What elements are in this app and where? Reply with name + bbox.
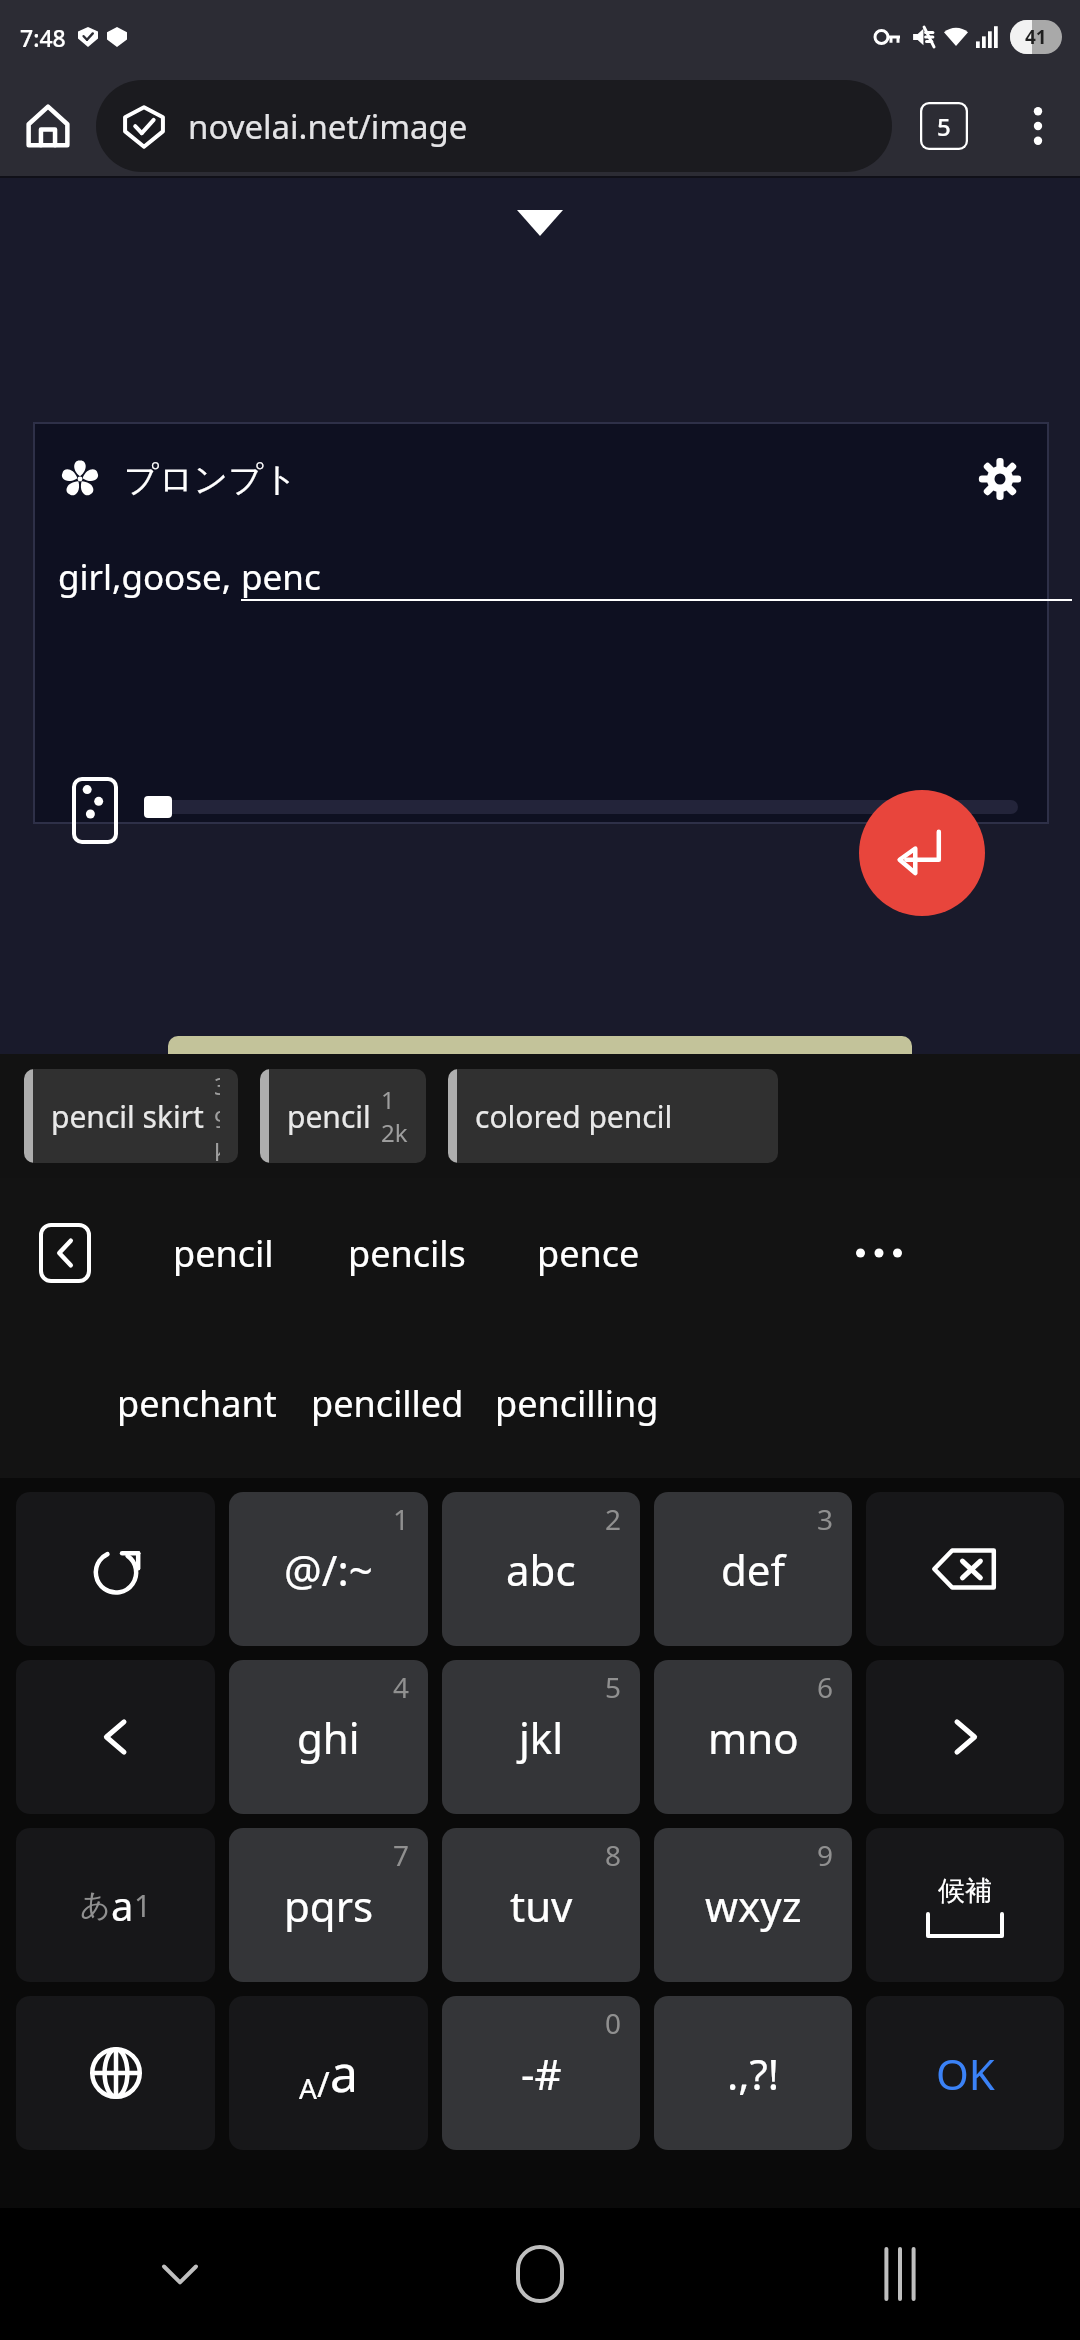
button[interactable]: back [866, 1492, 1064, 1646]
staticText: pqrs [284, 1877, 374, 1934]
staticText: 8 [605, 1836, 622, 1874]
button[interactable]: OK [866, 1996, 1064, 2150]
staticText: @/:~ [284, 1541, 373, 1598]
button[interactable]: novelai.net/image [96, 80, 892, 172]
staticText: 5 [605, 1668, 622, 1706]
button[interactable]: .,?! [654, 1996, 852, 2150]
staticText: 39k [214, 1069, 220, 1163]
staticText: pencil [173, 1229, 274, 1278]
button[interactable]: More suggestions [678, 1178, 1080, 1328]
button[interactable]: Tabs, 5 open [892, 74, 996, 178]
button[interactable]: 3 [654, 1492, 852, 1646]
button[interactable]: left [16, 1660, 215, 1814]
button[interactable]: globe [16, 1996, 215, 2150]
button[interactable]: Generate [859, 790, 985, 916]
staticText: A [299, 2069, 317, 2107]
button[interactable]: Hide keyboard [0, 2208, 360, 2340]
staticText: a [330, 2039, 359, 2107]
button[interactable]: More options [996, 74, 1080, 178]
staticText: 2 [605, 1500, 622, 1538]
staticText: 0 [605, 2004, 622, 2042]
button[interactable]: 1 [229, 1492, 428, 1646]
button[interactable]: 5 [442, 1660, 640, 1814]
staticText: 5 [937, 110, 951, 143]
button[interactable]: pencil skirt [24, 1069, 238, 1163]
button[interactable]: Settings [974, 453, 1026, 505]
button[interactable]: Home [0, 74, 96, 178]
staticText: 3 [817, 1500, 834, 1538]
staticText: 7:48 [20, 22, 66, 53]
button[interactable]: pencilled [292, 1328, 482, 1478]
button[interactable]: 0 [442, 1996, 640, 2150]
button[interactable]: pencilling [482, 1328, 672, 1478]
button[interactable]: pence [498, 1178, 678, 1328]
staticText: def [721, 1541, 785, 1598]
staticText: あ [80, 1886, 111, 1924]
staticText: 候補 [938, 1874, 992, 1908]
staticText: abc [506, 1541, 576, 1598]
staticText: 12k [381, 1083, 408, 1149]
button[interactable]: penchant [102, 1328, 292, 1478]
button[interactable]: pencil [260, 1069, 426, 1163]
staticText: pence [537, 1229, 640, 1278]
staticText: 9 [817, 1836, 834, 1874]
staticText: pencilled [311, 1379, 464, 1428]
staticText: pencils [348, 1229, 466, 1278]
staticText: wxyz [705, 1877, 802, 1934]
staticText: .,?! [727, 2045, 780, 2102]
staticText: 7 [393, 1836, 410, 1874]
staticText: novelai.net/image [188, 104, 468, 149]
button[interactable]: undo [16, 1492, 215, 1646]
button[interactable]: 8 [442, 1828, 640, 1982]
staticText: pencil [287, 1096, 371, 1137]
staticText: pencilling [495, 1379, 659, 1428]
staticText: penchant [117, 1379, 277, 1428]
button[interactable]: case [229, 1996, 428, 2150]
staticText: colored pencil (mediu [475, 1096, 760, 1137]
staticText: penc [241, 553, 321, 601]
button[interactable]: aa1 [16, 1828, 215, 1982]
staticText: ghi [297, 1709, 360, 1766]
button[interactable]: Previous suggestions [0, 1178, 130, 1328]
staticText: 6 [817, 1668, 834, 1706]
staticText: OK [936, 2045, 995, 2102]
staticText: 1 [134, 1885, 152, 1926]
staticText: girl,goose, [58, 553, 241, 601]
button[interactable]: right [866, 1660, 1064, 1814]
button[interactable]: Recent apps [720, 2208, 1080, 2340]
button[interactable]: 9 [654, 1828, 852, 1982]
staticText: 41 [1025, 24, 1047, 50]
button[interactable]: pencil [130, 1178, 316, 1328]
staticText: プロンプト [124, 458, 298, 501]
button[interactable]: pencils [316, 1178, 498, 1328]
staticText: pencil skirt [51, 1096, 204, 1137]
button[interactable]: kouho [866, 1828, 1064, 1982]
button[interactable]: 2 [442, 1492, 640, 1646]
staticText: mno [708, 1709, 799, 1766]
staticText: tuv [510, 1877, 573, 1934]
button[interactable]: 4 [229, 1660, 428, 1814]
staticText: a [111, 1878, 134, 1932]
button[interactable]: 6 [654, 1660, 852, 1814]
button[interactable]: colored pencil (mediu [448, 1069, 778, 1163]
button[interactable]: 7 [229, 1828, 428, 1982]
button[interactable]: Home [360, 2208, 720, 2340]
staticText: -# [521, 2045, 562, 2102]
staticText: / [317, 2061, 330, 2107]
staticText: jkl [519, 1709, 564, 1766]
staticText: 4 [393, 1668, 410, 1706]
staticText: 1 [393, 1500, 410, 1538]
